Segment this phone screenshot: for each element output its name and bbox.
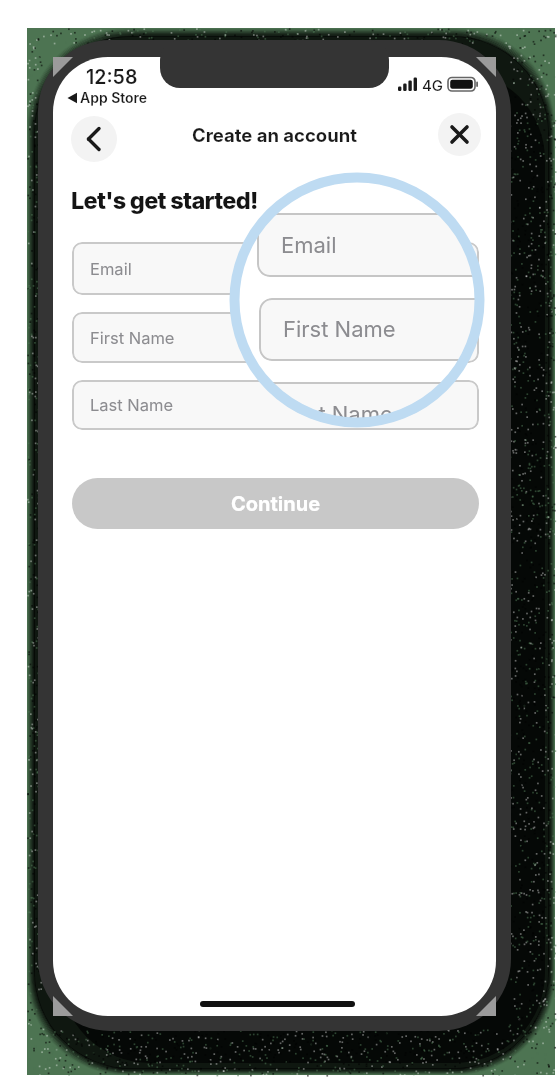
staticText: Create an account bbox=[192, 124, 358, 146]
staticText: Last Name bbox=[282, 401, 393, 421]
button[interactable]: Last Name bbox=[72, 380, 479, 430]
staticText: Email bbox=[281, 232, 337, 259]
staticText: Let's get started! bbox=[71, 186, 258, 214]
staticText: App Store bbox=[80, 89, 148, 106]
staticText: First Name bbox=[283, 316, 396, 343]
button[interactable]: Email bbox=[72, 242, 479, 295]
button[interactable] bbox=[438, 113, 481, 156]
staticText: Last Name bbox=[90, 395, 174, 415]
staticText: First Name bbox=[90, 328, 175, 348]
staticText: Continue bbox=[231, 492, 321, 516]
staticText: 4G bbox=[422, 76, 444, 94]
button[interactable]: First Name bbox=[72, 312, 479, 363]
staticText: 12:58 bbox=[86, 65, 138, 89]
button[interactable]: Continue bbox=[72, 478, 479, 529]
button[interactable] bbox=[71, 116, 117, 162]
staticText: Email bbox=[90, 259, 132, 279]
